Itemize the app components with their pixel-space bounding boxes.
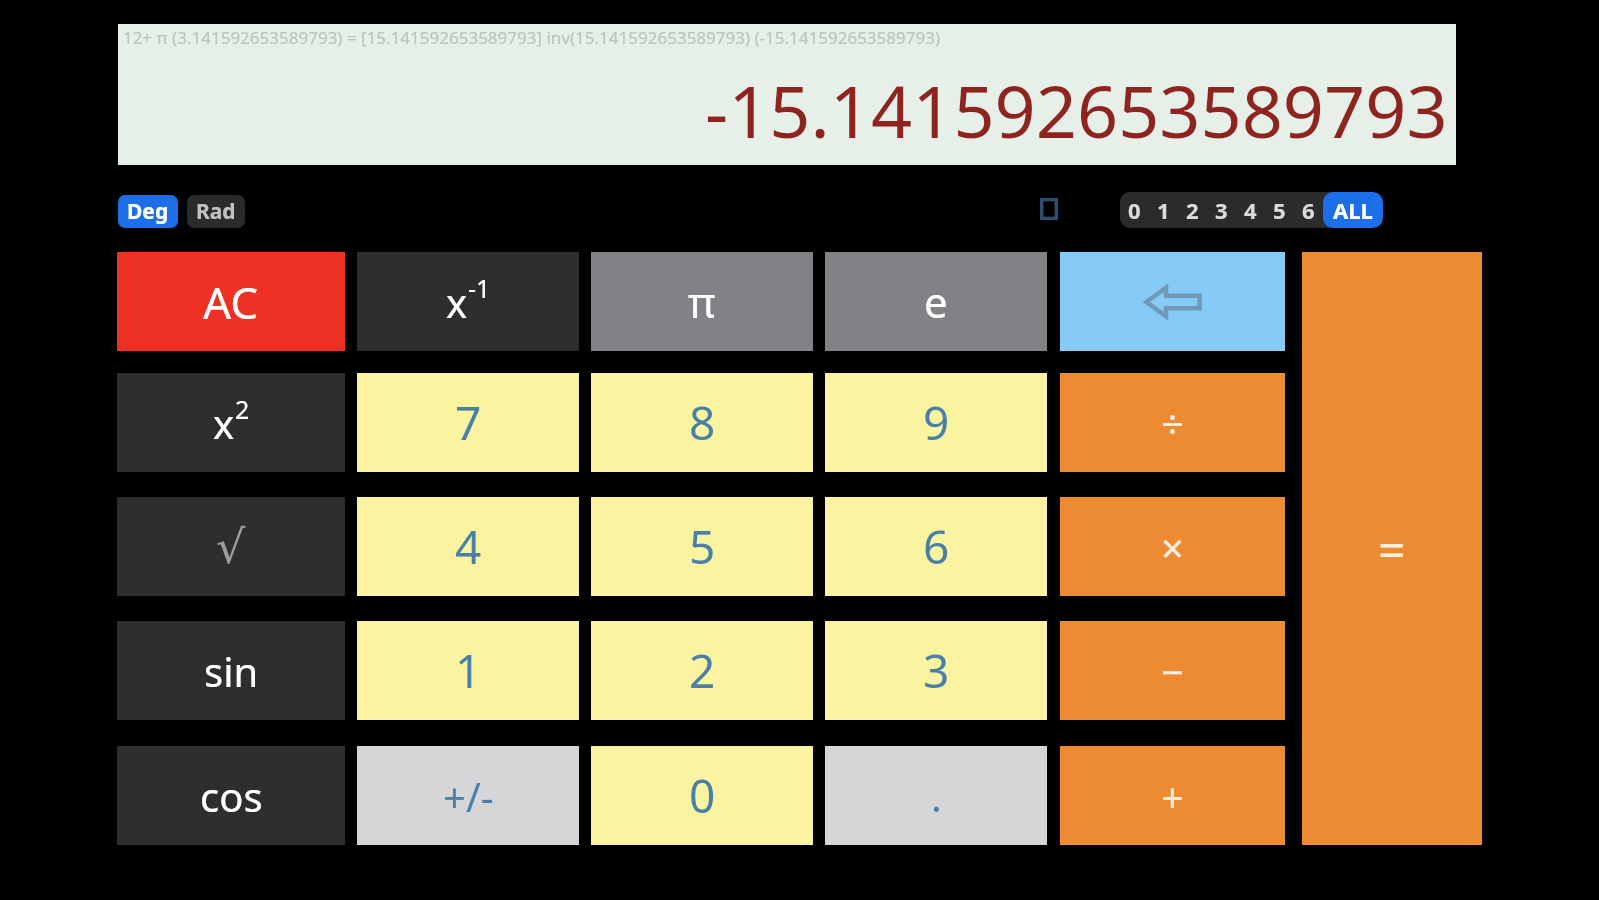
staticText: 2 [1186, 195, 1199, 225]
staticText: 0 [689, 764, 716, 827]
button[interactable]: 1 [357, 621, 579, 720]
button[interactable]: 4 [357, 497, 579, 596]
staticText: − [1161, 644, 1184, 698]
button[interactable]: 9 [825, 373, 1047, 472]
button[interactable]: × [1060, 497, 1285, 596]
staticText: -15.141592653589793 [705, 61, 1448, 159]
staticText: . [931, 769, 942, 823]
button[interactable]: π [591, 252, 813, 351]
staticText: 2 [689, 639, 716, 702]
staticText: 6 [1302, 195, 1315, 225]
staticText: 12+ π (3.141592653589793) = [15.14159265… [123, 26, 941, 49]
button[interactable]: 8 [591, 373, 813, 472]
staticText: cos [200, 769, 263, 823]
staticText: ÷ [1161, 396, 1184, 450]
button[interactable]: AC [117, 252, 345, 351]
button[interactable]: x squared [117, 373, 345, 472]
button[interactable]: Backspace [1060, 252, 1285, 351]
button[interactable]: ALL [1323, 192, 1383, 228]
staticText: 3 [1215, 195, 1228, 225]
staticText: 8 [689, 391, 716, 454]
staticText: 4 [455, 515, 482, 578]
button[interactable]: 5 [591, 497, 813, 596]
button[interactable]: cos [117, 746, 345, 845]
button[interactable]: 6 [825, 497, 1047, 596]
button[interactable]: sin [117, 621, 345, 720]
button[interactable]: 5 [1265, 192, 1294, 228]
button[interactable]: square root [117, 497, 345, 596]
staticText: 5 [689, 515, 716, 578]
button[interactable]: 3 [1207, 192, 1236, 228]
staticText: 0 [1128, 195, 1141, 225]
staticText: 2 [235, 392, 250, 426]
staticText: 6 [923, 515, 950, 578]
button[interactable]: 6 [1294, 192, 1323, 228]
staticText: Deg [127, 197, 169, 226]
staticText: AC [203, 272, 259, 332]
staticText: e [924, 273, 948, 330]
button[interactable]: e [825, 252, 1047, 351]
button[interactable]: + [1060, 746, 1285, 845]
staticText: sin [204, 644, 259, 698]
button[interactable]: 3 [825, 621, 1047, 720]
button[interactable]: − [1060, 621, 1285, 720]
button[interactable]: 1 [1149, 192, 1178, 228]
staticText: x [446, 275, 468, 329]
staticText: 1 [1157, 195, 1170, 225]
button[interactable]: +/- [357, 746, 579, 845]
staticText: 1 [455, 639, 482, 702]
staticText: x [213, 396, 235, 450]
button[interactable]: Deg [118, 195, 178, 228]
button[interactable]: 2 [591, 621, 813, 720]
button[interactable]: Copy result [1036, 196, 1062, 222]
staticText: 9 [923, 391, 950, 454]
staticText: √ [216, 520, 246, 574]
staticText: +/- [443, 769, 494, 823]
button[interactable]: = [1302, 252, 1482, 845]
staticText: = [1378, 516, 1406, 581]
button[interactable]: x inverse [357, 252, 579, 351]
staticText: 4 [1244, 195, 1257, 225]
staticText: + [1161, 769, 1184, 823]
button[interactable]: 0 [1120, 192, 1149, 228]
button[interactable]: ÷ [1060, 373, 1285, 472]
staticText: -1 [468, 271, 491, 305]
staticText: 7 [455, 391, 482, 454]
button[interactable]: 7 [357, 373, 579, 472]
button[interactable]: 2 [1178, 192, 1207, 228]
staticText: 3 [923, 639, 950, 702]
staticText: 5 [1273, 195, 1286, 225]
button[interactable]: Rad [187, 195, 245, 228]
staticText: × [1161, 520, 1184, 574]
staticText: Rad [196, 197, 236, 226]
button[interactable]: 4 [1236, 192, 1265, 228]
button[interactable]: 0 [591, 746, 813, 845]
staticText: ALL [1333, 195, 1373, 225]
button[interactable]: . [825, 746, 1047, 845]
staticText: π [688, 273, 716, 330]
